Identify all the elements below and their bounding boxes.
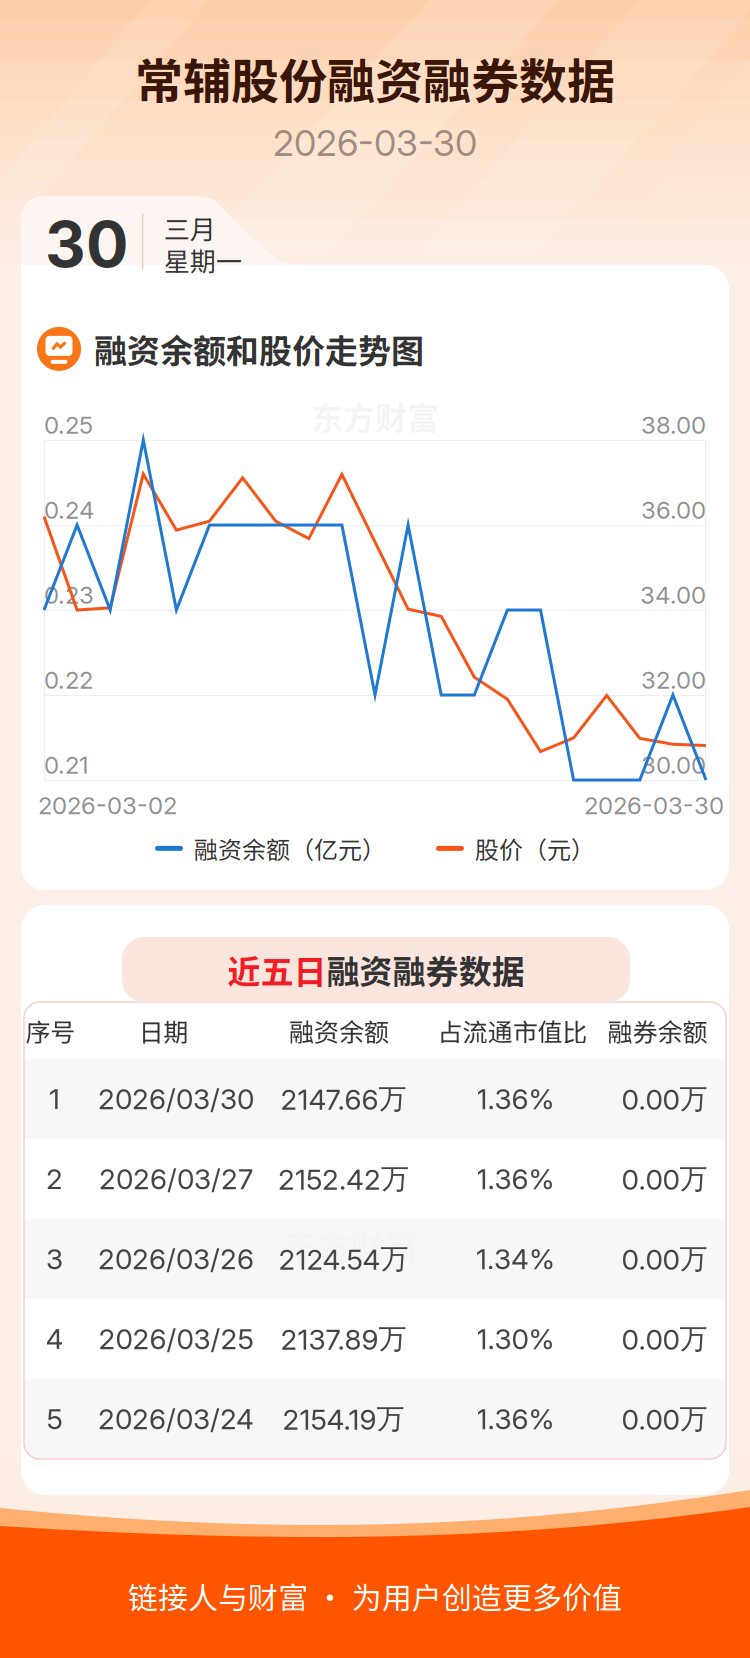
staticText: 融资余额和股价走势图	[94, 325, 424, 373]
staticText: 34.00	[640, 580, 706, 609]
staticText: 2	[46, 1162, 63, 1196]
staticText: 4	[45, 1322, 63, 1356]
staticText: 股价（元）	[475, 831, 595, 866]
staticText: 融券余额	[607, 1012, 707, 1049]
staticText: 1.36%	[476, 1402, 554, 1436]
staticText: 32.00	[641, 665, 706, 694]
staticText: 0.25	[44, 410, 93, 439]
staticText: 链接人与财富 · 为用户创造更多价值	[128, 1574, 622, 1618]
staticText: 2124.54万	[278, 1241, 408, 1277]
staticText: 占流通市值比	[437, 1012, 587, 1049]
staticText: 2026/03/25	[98, 1322, 253, 1356]
staticText: 2026/03/27	[99, 1162, 253, 1196]
staticText: 常辅股份融资融券数据	[135, 43, 615, 113]
staticText: 2137.89万	[280, 1321, 406, 1357]
staticText: 36.00	[641, 495, 706, 524]
staticText: 0.22	[44, 665, 93, 694]
staticText: 0.00万	[621, 1401, 707, 1437]
staticText: 0.23	[44, 580, 94, 609]
staticText: 2026-03-30	[273, 121, 477, 165]
staticText: 0.00万	[621, 1321, 707, 1357]
staticText: 序号	[25, 1012, 75, 1049]
staticText: 2152.42万	[278, 1161, 409, 1197]
staticText: 30	[45, 206, 128, 282]
staticText: 东方财富	[283, 1220, 419, 1269]
staticText: 1.30%	[476, 1322, 554, 1356]
staticText: 0.21	[44, 750, 89, 779]
staticText: 1	[49, 1082, 60, 1116]
staticText: 融资余额	[289, 1012, 389, 1049]
staticText: 1.36%	[476, 1082, 554, 1116]
staticText: 融资余额（亿元）	[194, 831, 386, 866]
staticText: 2026-03-02	[38, 791, 177, 820]
staticText: 0.00万	[621, 1241, 707, 1277]
staticText: 三月	[164, 209, 216, 247]
staticText: 5	[46, 1402, 62, 1436]
staticText: 2154.19万	[282, 1401, 404, 1437]
staticText: 30.00	[641, 750, 706, 779]
staticText: 0.00万	[621, 1081, 707, 1117]
staticText: 2026-03-30	[584, 791, 724, 820]
staticText: 3	[46, 1242, 63, 1276]
staticText: 东方财富	[311, 393, 439, 439]
staticText: 1.34%	[476, 1242, 555, 1276]
staticText: 1.36%	[476, 1162, 554, 1196]
staticText: 日期	[138, 1012, 188, 1049]
staticText: 2026/03/30	[98, 1082, 254, 1116]
staticText: 近五日	[227, 946, 326, 993]
staticText: 2026/03/24	[98, 1402, 254, 1436]
staticText: 融资融券数据	[326, 946, 524, 993]
staticText: 2147.66万	[280, 1081, 406, 1117]
staticText: 0.00万	[621, 1161, 707, 1197]
staticText: 38.00	[641, 410, 706, 439]
staticText: 星期一	[164, 241, 242, 279]
staticText: 2026/03/26	[98, 1242, 254, 1276]
staticText: 0.24	[44, 495, 94, 524]
